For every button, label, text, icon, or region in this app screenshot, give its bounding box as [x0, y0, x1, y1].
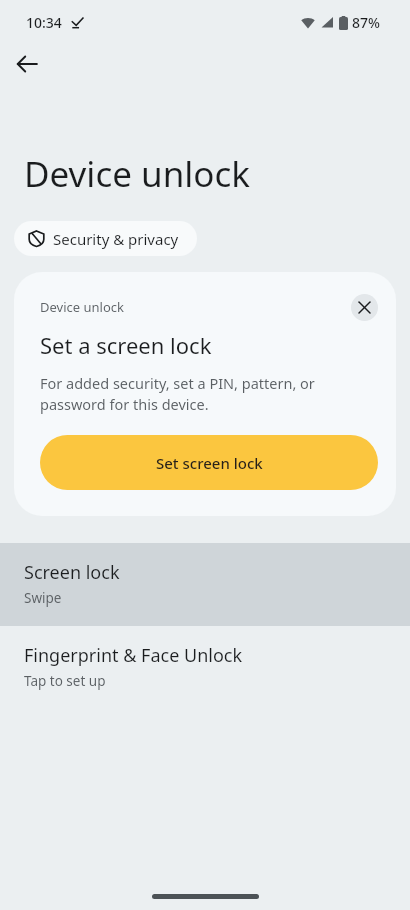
button[interactable]: Screen lock — [0, 543, 410, 626]
staticText: Set a screen lock — [40, 330, 212, 360]
staticText: For added security, set a PIN, pattern, … — [40, 373, 370, 415]
staticText: Set screen lock — [156, 453, 263, 473]
staticText: Device unlock — [40, 298, 351, 316]
button[interactable]: Dismiss — [351, 294, 378, 321]
button[interactable]: Fingerprint & Face Unlock — [0, 626, 410, 709]
staticText: 87% — [352, 13, 380, 32]
staticText: 10:34 — [26, 13, 62, 32]
staticText: Device unlock — [24, 150, 250, 198]
staticText: Swipe — [24, 589, 62, 607]
staticText: Tap to set up — [24, 672, 106, 690]
staticText: Fingerprint & Face Unlock — [24, 643, 243, 668]
staticText: Screen lock — [24, 560, 120, 585]
button[interactable]: Back — [7, 44, 47, 84]
button[interactable]: Set screen lock — [40, 435, 378, 490]
button[interactable]: Security & privacy — [14, 221, 197, 256]
staticText: Security & privacy — [53, 229, 179, 249]
